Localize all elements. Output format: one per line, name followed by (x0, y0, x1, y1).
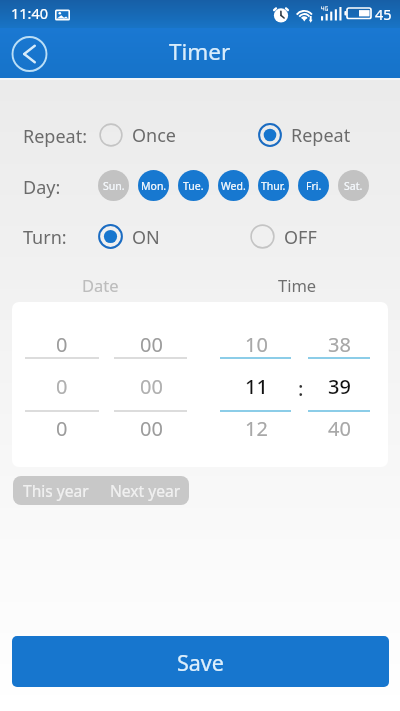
staticText: Sat. (344, 179, 363, 193)
staticText: Repeat: (23, 124, 87, 149)
button[interactable]: 40 (299, 413, 379, 443)
staticText: Turn: (23, 225, 67, 250)
staticText: Time (278, 274, 317, 296)
staticText: 0 (56, 415, 68, 442)
button[interactable]: 0 (22, 329, 102, 359)
staticText: Fri. (306, 179, 322, 193)
staticText: 45 (375, 4, 392, 24)
staticText: OFF (284, 225, 317, 250)
button[interactable]: 0 (22, 413, 102, 443)
button[interactable]: 10 (216, 329, 296, 359)
button[interactable]: Sun. (98, 170, 129, 201)
button[interactable]: 11 (216, 371, 296, 401)
button[interactable]: Wed. (218, 170, 249, 201)
button[interactable]: OFF (250, 224, 317, 249)
staticText: Save (177, 648, 224, 677)
staticText: 12 (245, 415, 268, 442)
button[interactable]: 12 (216, 413, 296, 443)
button[interactable]: Save (12, 636, 389, 687)
staticText: Date (82, 274, 119, 296)
button[interactable]: Sat. (338, 170, 369, 201)
staticText: 11:40 (11, 3, 49, 23)
staticText: Mon. (141, 179, 167, 193)
staticText: : (298, 375, 304, 402)
staticText: Day: (23, 175, 61, 200)
staticText: Repeat (291, 123, 351, 148)
button[interactable]: Back (10, 34, 49, 73)
staticText: 00 (140, 331, 163, 358)
staticText: 10 (245, 331, 268, 358)
staticText: Thur. (261, 179, 286, 193)
staticText: Next year (110, 480, 181, 501)
staticText: Sun. (103, 179, 125, 193)
staticText: Once (132, 123, 176, 148)
button[interactable]: Thur. (258, 170, 289, 201)
staticText: Timer (169, 36, 231, 67)
staticText: ON (132, 225, 160, 250)
staticText: 11 (245, 373, 268, 400)
staticText: Tue. (183, 179, 204, 193)
button[interactable]: 00 (111, 329, 191, 359)
staticText: 0 (56, 331, 68, 358)
staticText: 00 (140, 415, 163, 442)
button[interactable]: ON (98, 224, 160, 249)
button[interactable]: 39 (299, 371, 379, 401)
button[interactable]: Mon. (138, 170, 169, 201)
staticText: 39 (328, 373, 351, 400)
staticText: This year (23, 480, 89, 501)
button[interactable]: This year (13, 476, 99, 505)
button[interactable]: Fri. (298, 170, 329, 201)
staticText: 38 (328, 331, 351, 358)
button[interactable]: 0 (22, 371, 102, 401)
staticText: 40 (328, 415, 351, 442)
button[interactable]: Repeat (258, 122, 351, 147)
button[interactable]: 00 (111, 413, 191, 443)
button[interactable]: Next year (99, 476, 189, 505)
button[interactable]: Once (99, 122, 176, 147)
staticText: 00 (140, 373, 163, 400)
button[interactable]: 38 (299, 329, 379, 359)
staticText: Wed. (221, 179, 246, 193)
button[interactable]: Tue. (178, 170, 209, 201)
staticText: 0 (56, 373, 68, 400)
button[interactable]: 00 (111, 371, 191, 401)
